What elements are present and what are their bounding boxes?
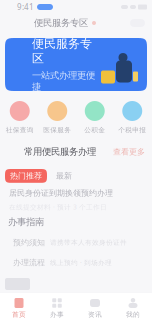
- button[interactable]: 办事指南: [0, 217, 152, 227]
- button[interactable]: 在线提交材料 · 预计 3 个工作日: [0, 203, 152, 211]
- staticText: 资讯: [88, 310, 102, 319]
- staticText: 常用便民服务办理: [24, 146, 96, 157]
- staticText: 公积金: [84, 126, 105, 134]
- staticText: 在线提交材料 · 预计 3 个工作日: [9, 203, 107, 211]
- staticText: 查看更多: [113, 147, 145, 157]
- button[interactable]: 办事: [38, 297, 76, 319]
- staticText: 办事指南: [8, 216, 44, 228]
- staticText: 办事: [50, 310, 64, 319]
- button[interactable]: 预约须知: [0, 238, 152, 247]
- button[interactable]: 最新: [56, 169, 72, 183]
- button[interactable]: 便民服务专区: [0, 38, 152, 91]
- staticText: 居民身份证到期换领预约办理: [9, 188, 113, 198]
- button[interactable]: 资讯: [76, 297, 114, 319]
- staticText: 首页: [12, 310, 26, 319]
- staticText: 我的: [126, 310, 140, 319]
- staticText: 最新: [56, 171, 72, 181]
- button[interactable]: 社保查询: [1, 101, 38, 134]
- button[interactable]: 热门推荐: [5, 169, 47, 183]
- staticText: 便民服务专区: [32, 36, 92, 66]
- button[interactable]: 个税申报: [113, 101, 151, 134]
- button[interactable]: 办理流程: [0, 258, 152, 267]
- staticText: 预约须知: [13, 238, 45, 247]
- staticText: 便民服务专区: [34, 17, 88, 29]
- staticText: 热门推荐: [10, 171, 42, 181]
- staticText: 线上预约 · 到场办理: [50, 258, 112, 267]
- button[interactable]: 我的: [114, 297, 152, 319]
- button[interactable]: 医保服务: [38, 101, 76, 134]
- button[interactable]: 首页: [0, 297, 38, 319]
- staticText: 办理流程: [13, 258, 45, 267]
- staticText: 社保查询: [6, 126, 34, 134]
- staticText: 一站式办理更便捷: [32, 70, 95, 93]
- button[interactable]: 公积金: [76, 101, 113, 134]
- staticText: 9:41: [17, 2, 34, 12]
- staticText: 请携带本人有效身份证件: [50, 238, 127, 247]
- staticText: 医保服务: [43, 126, 71, 134]
- button[interactable]: 居民身份证到期换领预约办理: [0, 188, 152, 198]
- staticText: 个税申报: [118, 126, 146, 134]
- button[interactable]: 查看更多: [113, 147, 145, 157]
